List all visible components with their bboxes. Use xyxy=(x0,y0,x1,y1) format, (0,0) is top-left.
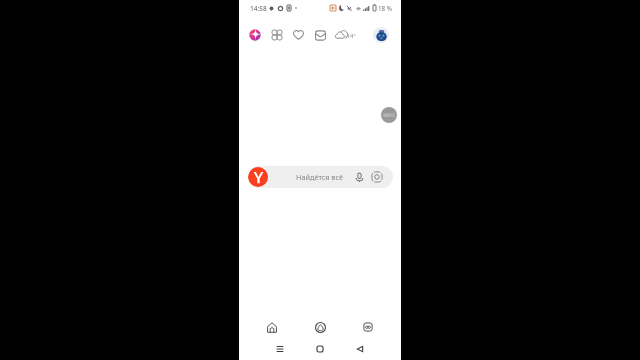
button[interactable]: Yandex xyxy=(248,166,393,188)
button[interactable]: Tabs xyxy=(352,315,384,339)
staticText: -14° xyxy=(345,32,356,40)
button[interactable]: Yandex xyxy=(248,167,268,187)
button[interactable]: Alice xyxy=(304,315,336,339)
button[interactable]: Home xyxy=(256,315,288,339)
button[interactable]: Profile xyxy=(373,27,389,43)
button[interactable]: Mail xyxy=(315,30,326,41)
button[interactable]: Weather xyxy=(334,27,358,43)
button[interactable]: Recents xyxy=(264,337,296,360)
button[interactable]: Services xyxy=(272,30,282,40)
button[interactable]: Back xyxy=(344,337,376,360)
button[interactable]: Assistant xyxy=(381,107,397,123)
button[interactable]: Favorites xyxy=(293,29,304,40)
button[interactable]: Plus xyxy=(248,28,262,42)
staticText: Найдётся всё xyxy=(296,172,343,182)
button[interactable]: Home xyxy=(304,337,336,360)
button[interactable]: Image search xyxy=(371,171,383,183)
staticText: 18 % xyxy=(378,4,393,13)
staticText: 14:58 xyxy=(250,4,267,13)
button[interactable]: Voice search xyxy=(353,171,365,183)
